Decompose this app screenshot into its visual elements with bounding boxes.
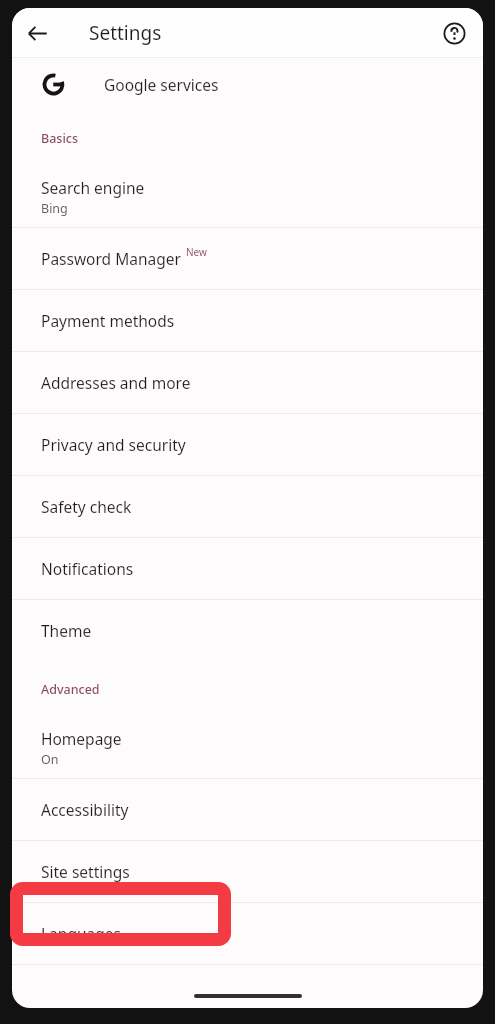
button[interactable]: Accessibility (12, 779, 483, 840)
staticText: Accessibility (41, 799, 129, 820)
staticText: Advanced (41, 681, 100, 698)
button[interactable]: Help and feedback (434, 13, 474, 53)
button[interactable]: Theme (12, 600, 483, 661)
button[interactable]: Google services (12, 58, 483, 110)
staticText: Theme (41, 620, 92, 641)
staticText: Site settings (41, 861, 130, 882)
button[interactable]: Site settings (12, 841, 483, 902)
staticText: Payment methods (41, 310, 175, 331)
staticText: Notifications (41, 558, 134, 579)
button[interactable]: Addresses and more (12, 352, 483, 413)
staticText: Basics (41, 130, 78, 147)
button[interactable]: Homepage (12, 717, 483, 778)
staticText: Search engine (41, 177, 145, 198)
button[interactable]: Back (17, 13, 57, 53)
staticText: Password Manager (41, 248, 181, 269)
staticText: On (41, 751, 59, 768)
staticText: Homepage (41, 728, 122, 749)
button[interactable]: Payment methods (12, 290, 483, 351)
staticText: Addresses and more (41, 372, 191, 393)
button[interactable]: Privacy and security (12, 414, 483, 475)
staticText: Bing (41, 200, 68, 217)
button[interactable]: Safety check (12, 476, 483, 537)
staticText: Safety check (41, 496, 132, 517)
button[interactable]: Notifications (12, 538, 483, 599)
staticText: Languages (41, 923, 121, 944)
staticText: Settings (89, 20, 162, 46)
button[interactable]: Languages (12, 903, 483, 964)
button[interactable]: Password Manager (12, 228, 483, 289)
button[interactable]: Search engine (12, 166, 483, 227)
staticText: Privacy and security (41, 434, 186, 455)
staticText: Google services (104, 74, 219, 95)
staticText: New (186, 245, 207, 259)
